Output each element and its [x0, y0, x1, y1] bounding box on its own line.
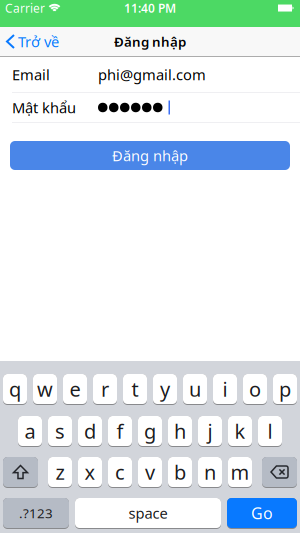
button[interactable]: b — [168, 457, 192, 488]
button[interactable]: o — [243, 374, 267, 405]
staticText: j — [207, 418, 212, 444]
staticText: space — [128, 503, 167, 523]
staticText: e — [69, 376, 80, 402]
button[interactable] — [262, 457, 297, 488]
staticText: u — [189, 376, 201, 402]
staticText: Đăng nhập — [112, 146, 188, 165]
staticText: s — [55, 418, 65, 444]
button[interactable]: a — [18, 416, 42, 447]
button[interactable]: .?123 — [3, 498, 69, 529]
button[interactable]: c — [108, 457, 132, 488]
button[interactable]: q — [3, 374, 27, 405]
staticText: y — [160, 376, 170, 402]
button[interactable]: z — [48, 457, 72, 488]
button[interactable]: n — [198, 457, 222, 488]
staticText: x — [84, 459, 95, 485]
staticText: p — [279, 376, 291, 402]
button[interactable]: t — [123, 374, 147, 405]
staticText: b — [174, 459, 186, 485]
staticText: Carrier — [5, 0, 45, 16]
staticText: n — [204, 459, 216, 485]
button[interactable]: h — [168, 416, 192, 447]
staticText: m — [230, 459, 249, 485]
staticText: a — [24, 418, 35, 444]
button[interactable]: space — [75, 498, 221, 529]
button[interactable]: w — [33, 374, 57, 405]
staticText: Go — [251, 502, 273, 524]
button[interactable] — [3, 457, 38, 488]
button[interactable]: i — [213, 374, 237, 405]
button[interactable]: Mật khẩu — [0, 93, 300, 123]
button[interactable]: r — [93, 374, 117, 405]
button[interactable]: e — [63, 374, 87, 405]
button[interactable]: g — [138, 416, 162, 447]
button[interactable]: u — [183, 374, 207, 405]
staticText: o — [249, 376, 261, 402]
button[interactable]: f — [108, 416, 132, 447]
staticText: 11:40 PM — [124, 0, 176, 16]
staticText: l — [267, 418, 272, 444]
staticText: c — [115, 459, 125, 485]
staticText: g — [144, 418, 156, 444]
staticText: Đăng nhập — [114, 33, 186, 50]
button[interactable]: x — [78, 457, 102, 488]
button[interactable]: l — [258, 416, 282, 447]
staticText: k — [234, 418, 245, 444]
staticText: v — [145, 459, 155, 485]
staticText: i — [222, 376, 227, 402]
staticText: Email — [12, 65, 50, 84]
button[interactable]: d — [78, 416, 102, 447]
button[interactable]: k — [228, 416, 252, 447]
staticText: .?123 — [19, 504, 53, 522]
button[interactable]: Đăng nhập — [10, 141, 290, 170]
button[interactable]: v — [138, 457, 162, 488]
button[interactable]: y — [153, 374, 177, 405]
staticText: z — [55, 459, 64, 485]
staticText: Mật khẩu — [12, 98, 76, 117]
button[interactable]: m — [228, 457, 252, 488]
staticText: q — [9, 376, 21, 402]
button[interactable]: Trở về — [7, 32, 59, 51]
staticText: phi@gmail.com — [98, 65, 206, 84]
staticText: t — [131, 376, 138, 402]
button[interactable]: j — [198, 416, 222, 447]
staticText: f — [116, 418, 123, 444]
button[interactable]: Go — [227, 498, 297, 529]
staticText: h — [174, 418, 186, 444]
button[interactable]: p — [273, 374, 297, 405]
staticText: Trở về — [18, 32, 59, 51]
staticText: d — [84, 418, 96, 444]
button[interactable]: Email — [0, 57, 300, 93]
staticText: r — [101, 376, 109, 402]
button[interactable]: s — [48, 416, 72, 447]
staticText: w — [37, 376, 53, 402]
